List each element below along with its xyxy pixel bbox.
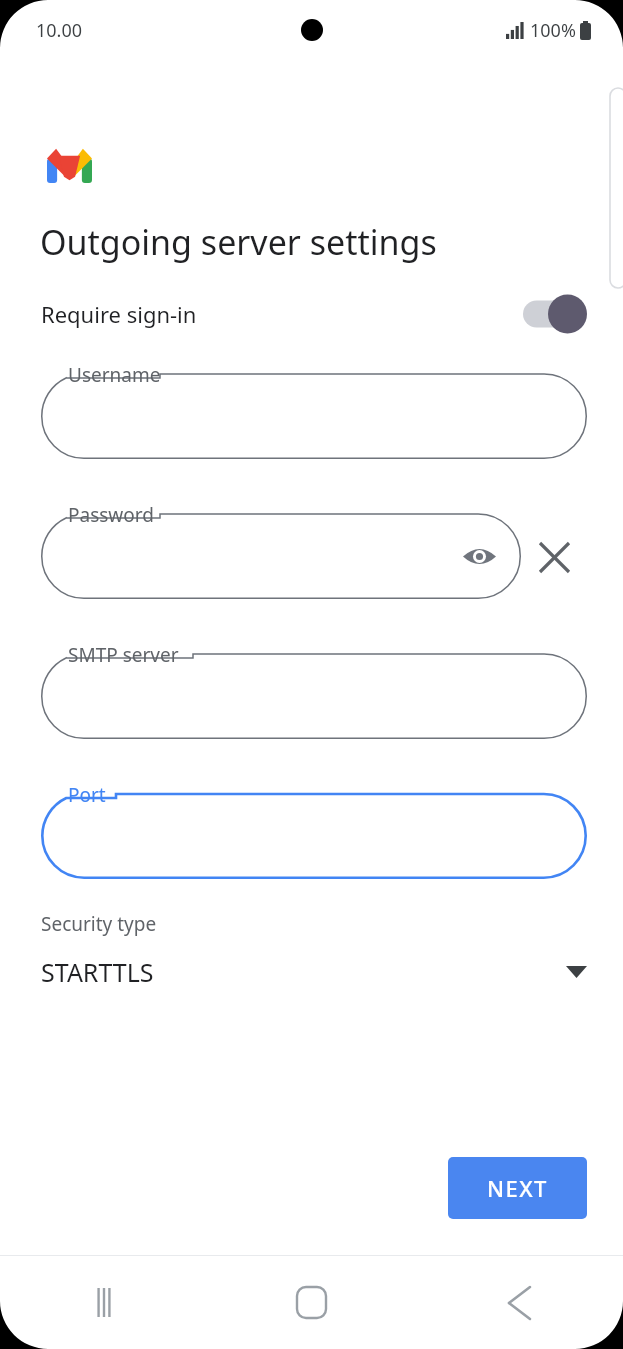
- button[interactable]: Port: [41, 779, 587, 879]
- button[interactable]: Password: [41, 499, 521, 599]
- staticText: Outgoing server settings: [40, 219, 437, 265]
- button[interactable]: SMTP server: [41, 639, 587, 739]
- staticText: Username: [68, 362, 161, 388]
- button[interactable]: [523, 292, 587, 336]
- button[interactable]: NEXT: [448, 1157, 587, 1219]
- staticText: 100%: [530, 18, 576, 43]
- staticText: STARTTLS: [41, 955, 154, 989]
- staticText: 10.00: [36, 18, 83, 43]
- staticText: Require sign-in: [41, 299, 197, 329]
- button[interactable]: Require sign-in: [0, 287, 623, 341]
- button[interactable]: Clear: [521, 499, 587, 599]
- button[interactable]: Username: [41, 359, 587, 459]
- staticText: NEXT: [487, 1173, 548, 1203]
- button[interactable]: Show password: [457, 534, 501, 578]
- button[interactable]: Back: [415, 1256, 623, 1349]
- staticText: Port: [68, 782, 106, 808]
- button[interactable]: Home: [207, 1256, 415, 1349]
- staticText: SMTP server: [68, 642, 179, 668]
- staticText: Security type: [41, 911, 157, 937]
- button[interactable]: Recents: [0, 1256, 207, 1349]
- button[interactable]: Security type: [0, 911, 623, 989]
- staticText: Password: [68, 502, 154, 528]
